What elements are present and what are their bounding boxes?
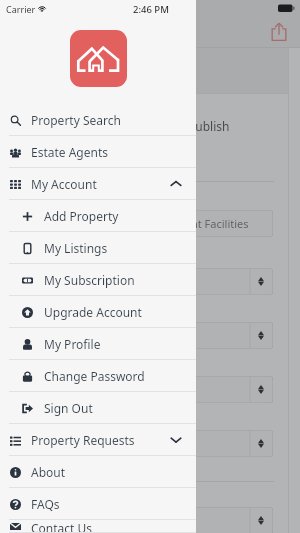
staticText: Sign Out	[44, 400, 93, 416]
other: App logo	[70, 30, 127, 87]
staticText: About	[31, 464, 66, 480]
button[interactable]: My Profile	[0, 328, 196, 360]
button[interactable]	[140, 507, 273, 533]
button[interactable]: Contact Us	[0, 520, 196, 533]
staticText: FAQs	[31, 496, 60, 512]
staticText: My Subscription	[44, 272, 135, 288]
button[interactable]: FAQs	[0, 488, 196, 520]
button[interactable]: Upgrade Account	[0, 296, 196, 328]
staticText: Carrier	[6, 3, 36, 15]
button[interactable]: Share	[268, 21, 290, 43]
staticText: Add Property	[44, 208, 119, 224]
button[interactable]	[140, 322, 273, 349]
button[interactable]: Sign Out	[0, 392, 196, 424]
staticText: Estate Agents	[31, 144, 109, 160]
button[interactable]: Apartment Facilities	[141, 210, 273, 237]
button[interactable]: My Account	[0, 168, 196, 200]
button[interactable]: Property Requests	[0, 424, 196, 456]
button[interactable]: Property Search	[0, 104, 196, 136]
button[interactable]: Estate Agents	[0, 136, 196, 168]
staticText: Contact Us	[31, 520, 93, 533]
staticText: My Profile	[44, 336, 101, 352]
button[interactable]	[140, 430, 273, 457]
staticText: Property Search	[31, 112, 121, 128]
staticText: Change Password	[44, 368, 145, 384]
button[interactable]: Change Password	[0, 360, 196, 392]
staticText: Publish	[188, 118, 230, 134]
button[interactable]	[140, 268, 273, 295]
staticText: 2:46 PM	[133, 3, 169, 16]
staticText: Apartment Facilities	[146, 216, 249, 231]
button[interactable]: My Subscription	[0, 264, 196, 296]
button[interactable]: My Listings	[0, 232, 196, 264]
staticText: Property Requests	[31, 432, 135, 448]
button[interactable]: About	[0, 456, 196, 488]
staticText: My Listings	[44, 240, 108, 256]
button[interactable]	[140, 376, 273, 403]
staticText: Upgrade Account	[44, 304, 142, 320]
button[interactable]: Add Property	[0, 200, 196, 232]
staticText: My Account	[31, 176, 97, 192]
